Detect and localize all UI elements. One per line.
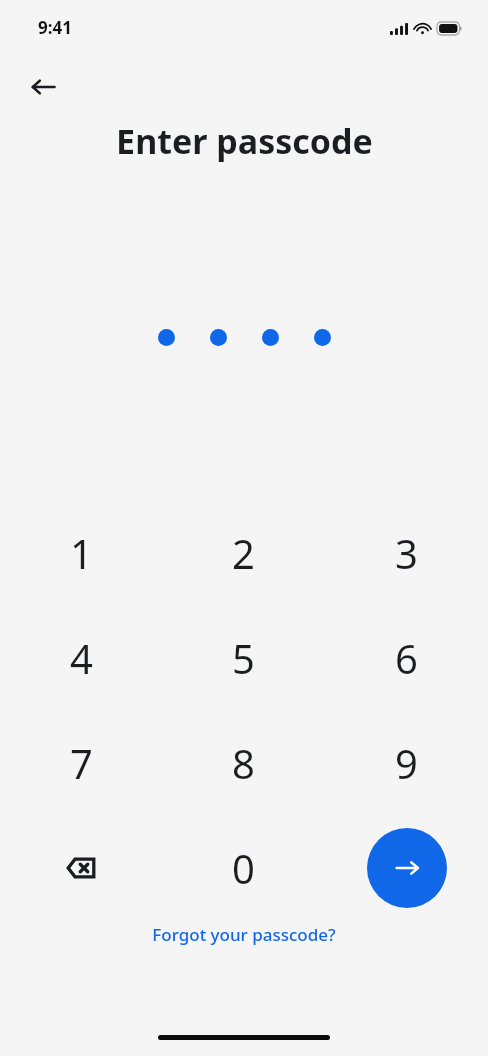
staticText: 1 [70, 526, 93, 580]
staticText: 5 [232, 631, 255, 685]
button[interactable]: 7 [0, 710, 162, 815]
button[interactable]: 3 [325, 500, 488, 605]
staticText: 4 [70, 631, 93, 685]
staticText: 2 [232, 526, 255, 580]
staticText: 9 [395, 736, 418, 790]
button[interactable]: 6 [325, 605, 488, 710]
staticText: Enter passcode [116, 118, 373, 164]
staticText: 6 [395, 631, 418, 685]
button[interactable]: 5 [162, 605, 325, 710]
staticText: 3 [395, 526, 418, 580]
button[interactable]: 9 [325, 710, 488, 815]
button[interactable]: 4 [0, 605, 162, 710]
button[interactable]: 8 [162, 710, 325, 815]
staticText: Forgot your passcode? [152, 923, 336, 946]
staticText: 9:41 [38, 16, 72, 39]
button[interactable]: Forgot your passcode? [140, 918, 348, 951]
staticText: 8 [232, 736, 255, 790]
button[interactable]: 1 [0, 500, 162, 605]
button[interactable]: 2 [162, 500, 325, 605]
button[interactable]: Back [22, 66, 64, 108]
button[interactable]: 0 [162, 815, 325, 920]
staticText: 0 [232, 841, 255, 895]
button[interactable]: Backspace [0, 815, 162, 920]
button[interactable]: Submit passcode [367, 828, 447, 908]
staticText: 7 [70, 736, 93, 790]
